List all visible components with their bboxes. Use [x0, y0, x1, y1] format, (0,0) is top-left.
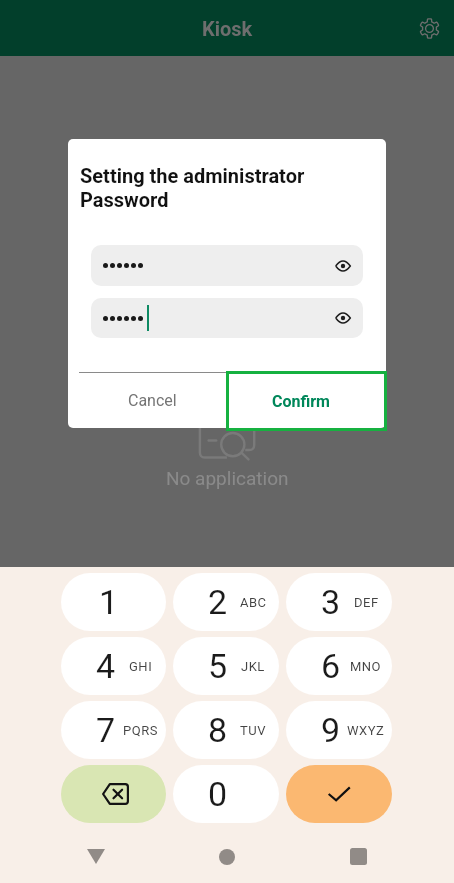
- button[interactable]: 6: [286, 637, 392, 695]
- button[interactable]: Settings: [409, 8, 449, 48]
- staticText: JKL: [241, 659, 265, 674]
- button[interactable]: 2: [173, 573, 279, 631]
- button[interactable]: 9: [286, 701, 392, 759]
- button[interactable]: 8: [173, 701, 279, 759]
- button[interactable]: Backspace: [61, 765, 166, 823]
- button[interactable]: Home: [199, 824, 255, 883]
- staticText: 7: [96, 710, 116, 750]
- button[interactable]: 0: [173, 765, 279, 823]
- staticText: 1: [99, 582, 119, 622]
- staticText: 5: [208, 646, 228, 686]
- staticText: Cancel: [128, 391, 177, 410]
- button[interactable]: 5: [173, 637, 279, 695]
- button[interactable]: Show password: [91, 298, 363, 338]
- button[interactable]: Show password: [91, 245, 363, 286]
- staticText: MNO: [350, 659, 382, 674]
- button[interactable]: Cancel: [79, 373, 226, 428]
- staticText: ABC: [240, 595, 267, 610]
- staticText: DEF: [354, 595, 379, 610]
- staticText: 2: [208, 582, 228, 622]
- button[interactable]: Show password: [331, 306, 355, 330]
- staticText: WXYZ: [347, 723, 385, 738]
- button[interactable]: Confirm: [226, 371, 387, 431]
- staticText: 3: [321, 582, 341, 622]
- staticText: GHI: [129, 659, 153, 674]
- staticText: 9: [321, 710, 341, 750]
- button[interactable]: Show password: [331, 254, 355, 278]
- staticText: 0: [208, 774, 228, 814]
- button[interactable]: 1: [61, 573, 166, 631]
- staticText: Confirm: [272, 392, 330, 411]
- button[interactable]: Hide keyboard: [68, 824, 124, 883]
- button[interactable]: 4: [61, 637, 166, 695]
- button[interactable]: Enter: [286, 765, 392, 823]
- staticText: TUV: [240, 723, 266, 738]
- staticText: PQRS: [123, 723, 158, 738]
- staticText: 6: [321, 646, 341, 686]
- button[interactable]: 7: [61, 701, 166, 759]
- staticText: Setting the administrator Password: [80, 164, 320, 212]
- staticText: No application: [166, 467, 289, 489]
- staticText: 4: [96, 646, 116, 686]
- staticText: Kiosk: [202, 17, 253, 40]
- staticText: 8: [208, 710, 228, 750]
- button[interactable]: Recents: [330, 824, 386, 883]
- button[interactable]: 3: [286, 573, 392, 631]
